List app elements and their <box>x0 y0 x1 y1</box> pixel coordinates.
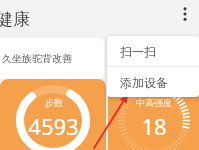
staticText: 步数 <box>45 97 63 108</box>
staticText: 久坐族驼背改善 <box>2 52 72 65</box>
staticText: 添加设备 <box>120 75 168 90</box>
button[interactable]: 扫一扫 <box>107 36 199 66</box>
staticText: 4593 <box>28 111 79 141</box>
button[interactable]: 步数 <box>0 79 106 150</box>
staticText: 扫一扫 <box>120 44 156 59</box>
staticText: 18 <box>141 111 167 141</box>
staticText: 中高强度 <box>136 97 172 108</box>
button[interactable]: 添加设备 <box>107 67 199 97</box>
button[interactable]: 中高强度 <box>108 79 199 150</box>
button[interactable]: 久坐族驼背改善 <box>0 38 104 79</box>
staticText: 健康 <box>0 9 30 30</box>
button[interactable]: More options <box>175 4 195 24</box>
